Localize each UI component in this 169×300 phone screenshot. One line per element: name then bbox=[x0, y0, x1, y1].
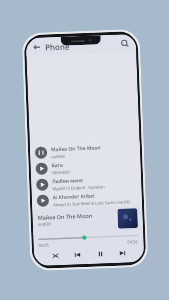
staticText: ouROН bbox=[38, 221, 52, 227]
button[interactable]: Любви меня bbox=[31, 173, 141, 193]
staticText: NEGHKEY bbox=[52, 170, 71, 175]
staticText: Майка On The Moon bbox=[37, 212, 93, 221]
staticText: Phone bbox=[45, 40, 70, 52]
button[interactable]: Ai Khonder Kribel bbox=[32, 189, 142, 209]
staticText: Бата bbox=[51, 162, 64, 169]
button[interactable]: Album art bbox=[117, 208, 138, 229]
button[interactable]: Back bbox=[31, 42, 42, 53]
staticText: Любви меня bbox=[52, 177, 83, 185]
staticText: Ai Khonder Kribel bbox=[53, 193, 95, 201]
staticText: Wya0313 Endpoit - Dynqton bbox=[52, 184, 106, 191]
staticText: Always JU Styk Behind Letic Sami Line M3 bbox=[53, 199, 131, 207]
button[interactable]: Pause bbox=[94, 247, 107, 261]
button[interactable]: Previous bbox=[71, 248, 84, 262]
button[interactable]: Seek bar bbox=[38, 232, 138, 243]
staticText: 04:32 bbox=[127, 239, 139, 244]
staticText: Майка On The Moon bbox=[51, 144, 101, 153]
button[interactable]: Бата bbox=[30, 157, 141, 177]
staticText: ouROН bbox=[51, 154, 65, 159]
button[interactable]: Next bbox=[116, 246, 129, 260]
button[interactable]: Search bbox=[119, 37, 131, 50]
button[interactable]: Майка On The Moon bbox=[30, 141, 140, 161]
staticText: 03:05 bbox=[38, 242, 50, 248]
button[interactable]: Shuffle bbox=[49, 249, 62, 262]
